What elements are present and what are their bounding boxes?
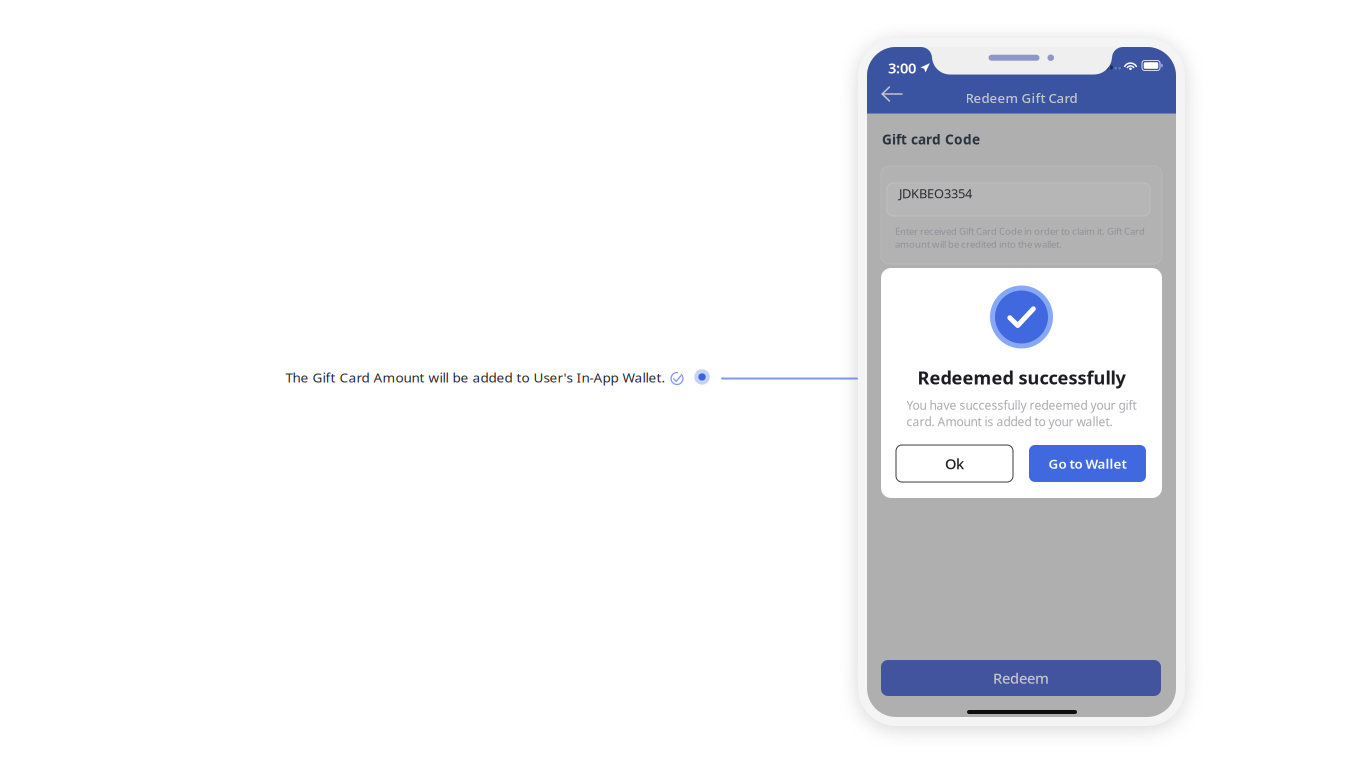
staticText: The Gift Card Amount will be added to Us… xyxy=(285,368,665,386)
button[interactable]: Redeem xyxy=(881,660,1161,696)
button[interactable]: Go to Wallet xyxy=(1029,445,1146,482)
staticText: 3:00 xyxy=(888,58,916,77)
button[interactable]: Back xyxy=(874,83,910,111)
staticText: Redeem xyxy=(993,668,1049,688)
staticText: Go to Wallet xyxy=(1048,455,1126,472)
staticText: You have successfully redeemed your gift… xyxy=(906,397,1136,430)
staticText: JDKBEO3354 xyxy=(899,184,972,202)
staticText: Redeem Gift Card xyxy=(965,89,1077,107)
staticText: Ok xyxy=(945,454,964,473)
staticText: Gift card Code xyxy=(882,130,980,148)
button[interactable]: Ok xyxy=(896,445,1013,482)
staticText: Redeemed successfully xyxy=(917,365,1125,390)
staticText: Enter received Gift Card Code in order t… xyxy=(895,224,1145,251)
